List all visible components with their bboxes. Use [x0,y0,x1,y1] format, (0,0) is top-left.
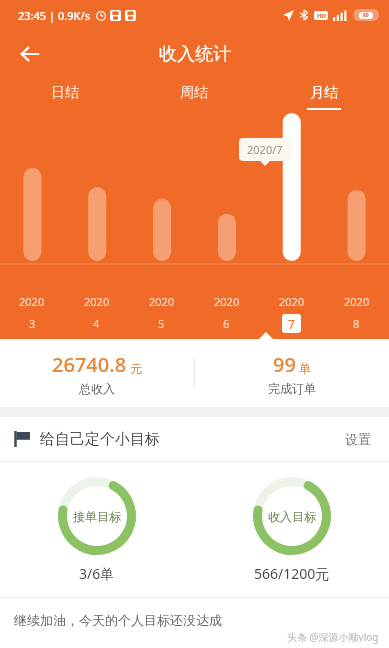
staticText: 收入目标 [268,509,316,524]
staticText: 2020 [214,294,240,309]
staticText: 5 [158,316,165,331]
staticText: 2020 [19,294,45,309]
staticText: 完成订单 [268,381,316,396]
staticText: 7 [288,316,295,332]
staticText: 23:45 | 0.9K/s [18,8,91,23]
button[interactable]: 设置 [341,427,375,451]
button[interactable]: Back [8,32,52,76]
staticText: 设置 [345,431,371,447]
staticText: 6 [223,316,230,331]
staticText: 总收入 [79,381,115,396]
button[interactable]: 99 [195,339,389,407]
staticText: 头条 @深源小顺vlog [287,630,379,644]
staticText: 26740.8 [52,351,127,378]
staticText: 2020 [84,294,110,309]
staticText: 继续加油，今天的个人目标还没达成 [14,612,222,628]
staticText: HD [317,12,326,20]
staticText: 566/1200元 [254,564,330,583]
staticText: 4 [93,316,100,331]
staticText: 2020 [149,294,175,309]
button[interactable]: 26740.8 [0,339,194,407]
staticText: 月结 [310,84,338,102]
staticText: 元 [130,361,142,376]
button[interactable]: 收入目标 [194,462,389,597]
staticText: 99 [273,351,296,378]
staticText: 2020 [279,294,305,309]
staticText: 收入统计 [159,43,231,66]
staticText: 3 [29,316,36,331]
staticText: 日结 [51,84,79,102]
button[interactable]: 周结 [129,78,259,116]
staticText: 3/6单 [79,564,115,583]
button[interactable]: 接单目标 [0,462,194,597]
staticText: 80 [363,12,369,19]
staticText: 8 [353,316,360,331]
staticText: 接单目标 [73,509,121,524]
staticText: 2020/7 [247,142,283,157]
button[interactable]: 月结 [259,78,389,116]
button[interactable]: 日结 [0,78,129,116]
staticText: 2020 [344,294,370,309]
staticText: 单 [299,361,311,376]
staticText: 给自己定个小目标 [40,430,160,449]
staticText: 周结 [180,84,208,102]
